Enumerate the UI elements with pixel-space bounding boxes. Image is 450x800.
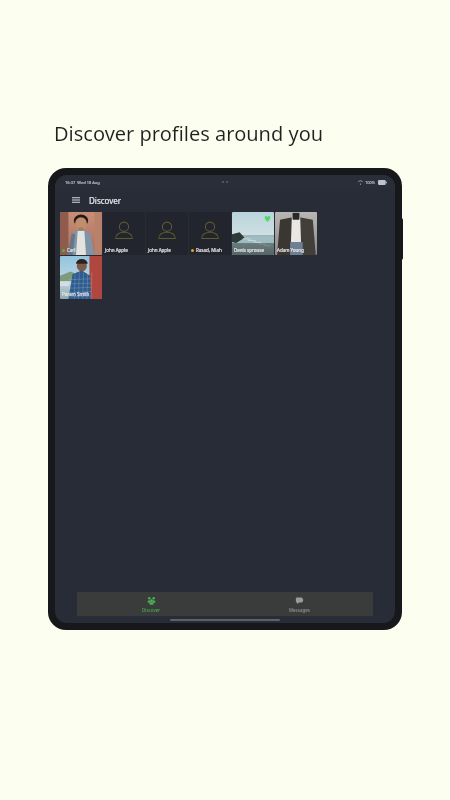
button[interactable]: John Apple [103,212,145,255]
button[interactable]: Carl [60,212,102,255]
staticText: Discover [89,195,122,206]
button[interactable]: Open navigation menu [69,193,83,207]
staticText: Discover profiles around you [54,120,324,147]
button[interactable]: Param Smith [60,256,102,299]
button[interactable]: John Apple [146,212,188,255]
button[interactable]: Rasad, Miah [189,212,231,255]
staticText: John Apple [105,247,128,253]
button[interactable]: Messages [225,592,373,616]
staticText: Discover [142,607,161,613]
staticText: Param Smith [62,291,90,297]
button[interactable]: Discover [77,592,225,616]
staticText: Adam Young [277,247,304,253]
staticText: Rasad, Miah [196,247,222,253]
button[interactable]: Adam Young [275,212,317,255]
staticText: 100% [365,180,376,185]
staticText: John Apple [148,247,171,253]
staticText: 16:37 Wed 18 Aug [65,180,100,185]
staticText: Carl [67,247,76,253]
staticText: Denis sprouse [234,247,264,253]
button[interactable]: Denis sprouse [232,212,274,255]
staticText: Messages [289,607,310,613]
